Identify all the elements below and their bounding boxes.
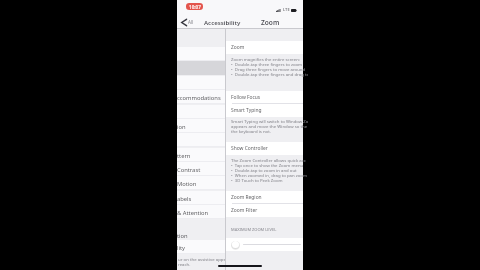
staticText: Motion: [177, 180, 197, 188]
staticText: tion: [177, 232, 188, 240]
button[interactable]: [177, 47, 225, 61]
staticText: Contrast: [177, 166, 201, 174]
button[interactable]: [177, 76, 225, 90]
staticText: Zoom Filter: [231, 207, 258, 214]
button[interactable]: Zoom: [226, 41, 303, 54]
staticText: ccommodations: [177, 94, 221, 102]
button[interactable]: ccommodations: [177, 90, 225, 104]
button[interactable]: [177, 105, 225, 119]
staticText: Zoom: [231, 44, 245, 51]
staticText: Follow Focus: [231, 94, 261, 101]
button[interactable]: lity: [177, 240, 225, 254]
staticText: & Attention: [177, 209, 209, 217]
staticText: lity: [177, 244, 186, 252]
staticText: The Zoom Controller allows quick acc • T…: [231, 157, 307, 183]
staticText: Smart Typing will switch to Window Zoom …: [231, 118, 308, 134]
staticText: Zoom Region: [231, 194, 262, 201]
staticText: abels: [177, 195, 192, 203]
button[interactable]: abels: [177, 191, 225, 205]
staticText: MAXIMUM ZOOM LEVEL: [231, 227, 277, 232]
button[interactable]: Smart Typing: [226, 104, 303, 117]
staticText: Accessibility: [204, 18, 241, 26]
button[interactable]: [226, 238, 303, 251]
button[interactable]: Contrast: [177, 162, 225, 176]
staticText: All: [188, 19, 194, 25]
staticText: 10:07: [189, 4, 201, 10]
staticText: Zoom magnifies the entire screen: • Doub…: [231, 56, 308, 77]
staticText: Zoom: [261, 18, 280, 27]
staticText: ttern: [177, 152, 191, 160]
staticText: Show Controller: [231, 145, 268, 152]
button[interactable]: Zoom Filter: [226, 204, 303, 217]
button[interactable]: [177, 133, 225, 147]
button[interactable]: Motion: [177, 176, 225, 190]
button[interactable]: Follow Focus: [226, 91, 303, 104]
button[interactable]: Zoom Region: [226, 191, 303, 204]
button[interactable]: Recording 10:07: [186, 3, 203, 10]
button[interactable]: Show Controller: [226, 142, 303, 155]
staticText: Smart Typing: [231, 107, 262, 114]
button[interactable]: ttern: [177, 148, 225, 162]
button[interactable]: & Attention: [177, 205, 225, 219]
staticText: ur on the assistive apps at reach.: [178, 256, 226, 267]
staticText: LTE: [283, 7, 290, 13]
staticText: ion: [177, 123, 186, 131]
button[interactable]: Back: [177, 15, 198, 29]
button[interactable]: ion: [177, 119, 225, 133]
other: Back: [181, 18, 187, 27]
